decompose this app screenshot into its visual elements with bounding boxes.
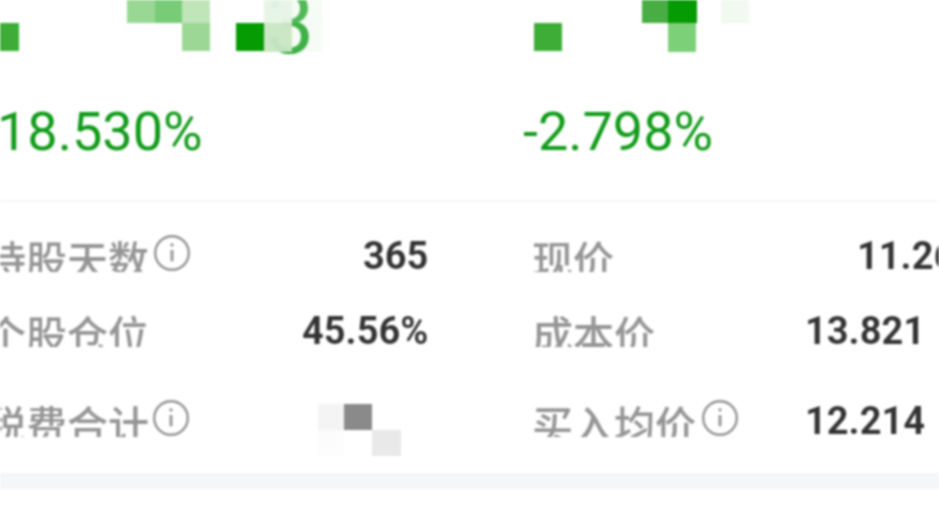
staticText: 买入均价 xyxy=(532,393,696,437)
staticText: 3 xyxy=(266,0,315,74)
staticText: 18.530% xyxy=(0,100,203,163)
other: 税费合计说明 xyxy=(153,400,189,436)
button[interactable]: 税费合计 xyxy=(0,396,429,440)
staticText: -2.798% xyxy=(523,100,714,163)
staticText: 成本价 xyxy=(532,303,655,347)
staticText: 税费合计 xyxy=(0,393,149,437)
button[interactable]: 买入均价 xyxy=(532,396,926,440)
staticText: 365 xyxy=(363,234,429,278)
staticText: 个股仓位 xyxy=(0,303,149,347)
other: 持股天数说明 xyxy=(154,235,190,271)
staticText: 持股天数 xyxy=(0,228,149,272)
staticText: 12.214 xyxy=(805,399,926,443)
button[interactable]: 现价 xyxy=(532,231,939,275)
staticText: 现价 xyxy=(532,228,614,272)
button[interactable]: 成本价 xyxy=(532,306,926,350)
staticText: 11.260 xyxy=(857,234,939,278)
staticText: 13.821 xyxy=(805,309,926,353)
other: 买入均价说明 xyxy=(702,400,738,436)
staticText: 45.56% xyxy=(302,309,429,353)
button[interactable]: 个股仓位 xyxy=(0,306,429,350)
button[interactable]: 持股天数 xyxy=(0,231,429,275)
